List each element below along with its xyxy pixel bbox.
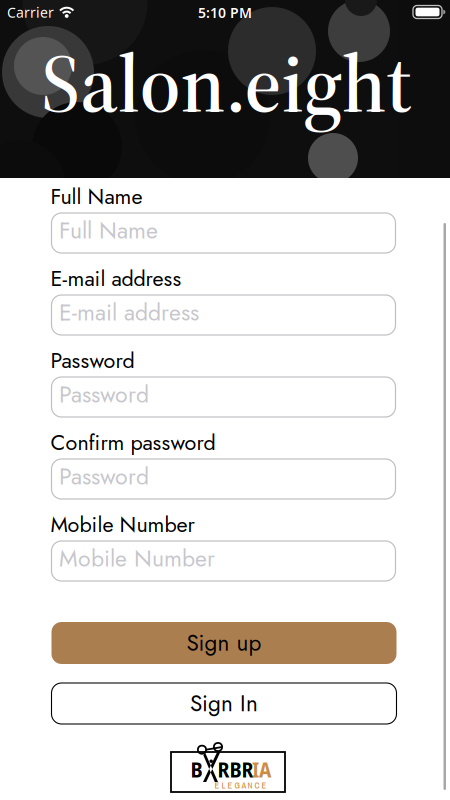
staticText: E-mail address	[50, 263, 181, 294]
staticText: E-mail address	[59, 296, 199, 329]
staticText: Sign In	[190, 687, 258, 720]
staticText: Password	[59, 378, 149, 411]
textField[interactable]	[51, 300, 395, 330]
staticText: 5:10 PM	[198, 3, 252, 22]
staticText: Salon.eight	[41, 29, 411, 138]
button[interactable]: Sign up	[51, 622, 396, 664]
staticText: Mobile Number	[50, 509, 194, 540]
staticText: Full Name	[50, 181, 142, 212]
staticText: Mobile Number	[59, 542, 215, 575]
staticText: Sign up	[186, 627, 261, 659]
staticText: Password	[50, 345, 134, 376]
textField[interactable]	[51, 218, 395, 248]
staticText: Full Name	[59, 214, 158, 247]
staticText: B	[190, 754, 202, 784]
textField[interactable]	[51, 382, 395, 412]
staticText: RBR	[217, 754, 253, 784]
staticText: E L E G A N C E	[214, 780, 266, 791]
textField[interactable]	[51, 464, 395, 494]
staticText: IA	[252, 754, 271, 784]
staticText: Confirm password	[50, 427, 215, 458]
staticText: Password	[59, 460, 149, 493]
staticText: Carrier	[7, 3, 54, 22]
button[interactable]: Sign In	[51, 683, 396, 724]
textField[interactable]	[51, 546, 395, 576]
